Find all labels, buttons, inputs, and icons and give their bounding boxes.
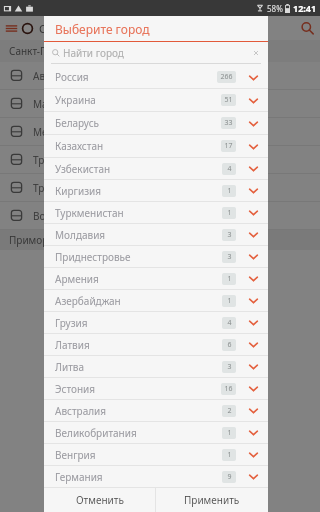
staticText: 1 (227, 296, 232, 306)
staticText: Грузия (55, 316, 88, 330)
staticText: Литва (55, 360, 85, 374)
button[interactable]: Трамвай (0, 174, 320, 201)
staticText: 12:41 (293, 2, 317, 14)
staticText: Украина (55, 93, 96, 107)
staticText: Отменить (76, 493, 124, 507)
button[interactable]: Литва (44, 356, 268, 377)
staticText: Санкт-Петербург (9, 44, 91, 58)
staticText: Россия (55, 70, 89, 84)
button[interactable]: Menu (5, 22, 18, 35)
button[interactable]: Узбекистан (44, 158, 268, 179)
button[interactable]: Search (300, 21, 315, 36)
staticText: 1 (227, 186, 232, 196)
staticText: Автобус (33, 69, 71, 83)
staticText: 266 (220, 72, 233, 82)
button[interactable]: Троллейбус (0, 146, 320, 173)
staticText: Метро (33, 125, 65, 139)
staticText: Армения (55, 272, 99, 286)
staticText: Трамвай (33, 181, 75, 195)
button[interactable]: Казахстан (44, 135, 268, 157)
staticText: 16 (224, 384, 233, 394)
staticText: Узбекистан (55, 162, 111, 176)
staticText: Австралия (55, 404, 107, 418)
button[interactable]: Метро (0, 118, 320, 145)
staticText: 3 (227, 362, 232, 372)
staticText: 1 (227, 428, 232, 438)
button[interactable]: Венгрия (44, 444, 268, 465)
staticText: 3 (227, 230, 232, 240)
staticText: 51 (224, 95, 233, 105)
staticText: Найти город (63, 46, 124, 60)
staticText: 4 (227, 164, 232, 174)
button[interactable]: Найти город (44, 42, 268, 63)
staticText: Троллейбус (33, 153, 90, 167)
staticText: Венгрия (55, 448, 96, 462)
staticText: Беларусь (55, 116, 100, 130)
button[interactable]: Водный (0, 202, 320, 229)
button[interactable]: Австралия (44, 400, 268, 421)
button[interactable]: Армения (44, 268, 268, 289)
button[interactable]: Автобус (0, 62, 320, 89)
button[interactable]: Эстония (44, 378, 268, 399)
staticText: Азербайджан (55, 294, 121, 308)
staticText: Приднестровье (55, 250, 131, 264)
button[interactable]: Беларусь (44, 112, 268, 134)
button[interactable]: Киргизия (44, 180, 268, 201)
button[interactable]: Маршрутка (0, 90, 320, 117)
staticText: Великобритания (55, 426, 137, 440)
button[interactable]: Латвия (44, 334, 268, 355)
staticText: Справ (39, 21, 72, 36)
staticText: Водный (33, 209, 72, 223)
staticText: 1 (227, 208, 232, 218)
staticText: Выберите город (55, 21, 150, 37)
staticText: Применить (184, 493, 240, 507)
staticText: Киргизия (55, 184, 101, 198)
staticText: 33 (224, 118, 233, 128)
button[interactable]: Молдавия (44, 224, 268, 245)
staticText: Латвия (55, 338, 90, 352)
button[interactable]: Отменить (44, 488, 155, 512)
button[interactable]: Россия (44, 66, 268, 88)
staticText: Казахстан (55, 139, 104, 153)
staticText: 3 (227, 252, 232, 262)
staticText: 9 (227, 472, 232, 482)
other: Clear search (252, 49, 260, 57)
button[interactable]: Применить (156, 488, 268, 512)
staticText: Маршрутка (33, 97, 89, 111)
staticText: 2 (227, 406, 232, 416)
button[interactable]: Германия (44, 466, 268, 487)
staticText: 58% (267, 3, 283, 14)
staticText: 4 (227, 318, 232, 328)
staticText: Приморская (9, 233, 70, 247)
staticText: 1 (227, 274, 232, 284)
button[interactable]: Азербайджан (44, 290, 268, 311)
button[interactable]: Приднестровье (44, 246, 268, 267)
button[interactable]: Великобритания (44, 422, 268, 443)
staticText: Туркменистан (55, 206, 124, 220)
button[interactable]: Туркменистан (44, 202, 268, 223)
staticText: 17 (224, 141, 233, 151)
button[interactable]: Санкт-Петербург (0, 40, 320, 62)
button[interactable]: Украина (44, 89, 268, 111)
staticText: 1 (227, 450, 232, 460)
staticText: Германия (55, 470, 103, 484)
staticText: 6 (227, 340, 232, 350)
staticText: Молдавия (55, 228, 106, 242)
staticText: Эстония (55, 382, 96, 396)
button[interactable]: Грузия (44, 312, 268, 333)
